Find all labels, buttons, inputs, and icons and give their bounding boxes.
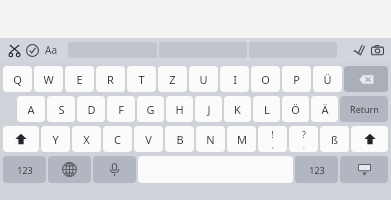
staticText: V <box>145 132 152 147</box>
staticText: C <box>114 132 121 147</box>
staticText: ! <box>271 128 274 140</box>
staticText: X <box>83 132 90 147</box>
staticText: ? <box>302 128 306 140</box>
staticText: R <box>107 72 114 87</box>
staticText: A <box>27 102 35 117</box>
staticText: , <box>272 141 274 151</box>
staticText: E <box>76 72 83 87</box>
button[interactable]: ! <box>258 126 287 152</box>
staticText: 123 <box>309 164 325 176</box>
button[interactable]: Y <box>41 126 70 152</box>
button[interactable]: U <box>189 66 218 92</box>
button[interactable]: K <box>224 96 251 122</box>
button[interactable]: W <box>34 66 63 92</box>
button[interactable]: X <box>72 126 101 152</box>
button[interactable]: A <box>17 96 45 122</box>
button[interactable]: P <box>282 66 311 92</box>
button[interactable]: Camera <box>368 41 386 59</box>
staticText: I <box>233 72 237 87</box>
button[interactable]: L <box>253 96 280 122</box>
staticText: U <box>199 72 208 87</box>
staticText: W <box>43 72 54 87</box>
button[interactable]: Cut <box>5 41 23 59</box>
staticText: Aa <box>45 43 57 57</box>
button[interactable]: S <box>47 96 75 122</box>
button[interactable]: J <box>195 96 222 122</box>
button[interactable]: Confirm <box>23 41 41 59</box>
button[interactable]: M <box>227 126 256 152</box>
button[interactable]: Backspace <box>344 66 388 92</box>
staticText: Ö <box>291 102 300 117</box>
staticText: H <box>175 102 184 117</box>
staticText: F <box>118 102 124 117</box>
staticText: Ä <box>321 102 329 117</box>
button[interactable]: Switch language <box>48 156 91 183</box>
button[interactable]: Z <box>158 66 187 92</box>
button[interactable]: D <box>77 96 105 122</box>
button[interactable]: O <box>251 66 280 92</box>
button[interactable]: Aa <box>41 41 61 59</box>
button[interactable]: I <box>220 66 249 92</box>
staticText: G <box>146 102 155 117</box>
staticText: Z <box>169 72 176 87</box>
button[interactable]: C <box>103 126 132 152</box>
button[interactable]: ? <box>289 126 318 152</box>
staticText: P <box>293 72 300 87</box>
staticText: K <box>234 102 241 117</box>
staticText: B <box>176 132 184 147</box>
button[interactable]: T <box>127 66 156 92</box>
button[interactable]: Q <box>3 66 32 92</box>
button[interactable]: Shift <box>351 126 388 152</box>
button[interactable]: Hide keyboard <box>340 156 388 183</box>
button[interactable]: E <box>65 66 94 92</box>
button[interactable]: Ä <box>311 96 338 122</box>
staticText: Return <box>350 103 379 115</box>
button[interactable]: B <box>165 126 194 152</box>
button[interactable]: Markup <box>350 41 368 59</box>
staticText: O <box>261 72 270 87</box>
button[interactable]: Ü <box>313 66 342 92</box>
staticText: M <box>237 132 247 147</box>
button[interactable]: Return <box>340 96 388 122</box>
staticText: ß <box>331 132 338 147</box>
button[interactable]: Shift <box>3 126 39 152</box>
staticText: Q <box>13 72 22 87</box>
staticText: L <box>264 102 270 117</box>
button[interactable]: Dictate <box>93 156 136 183</box>
button[interactable]: 123 <box>295 156 338 183</box>
staticText: T <box>138 72 145 87</box>
staticText: 123 <box>17 164 33 176</box>
button[interactable]: H <box>166 96 193 122</box>
staticText: Y <box>52 132 59 147</box>
staticText: N <box>206 132 215 147</box>
staticText: J <box>207 102 211 117</box>
staticText: D <box>87 102 96 117</box>
button[interactable]: F <box>107 96 135 122</box>
staticText: Ü <box>323 72 332 87</box>
button[interactable]: ß <box>320 126 349 152</box>
button[interactable]: R <box>96 66 125 92</box>
staticText: S <box>58 102 65 117</box>
button[interactable]: 123 <box>3 156 46 183</box>
staticText: . <box>303 141 305 151</box>
button[interactable]: G <box>137 96 164 122</box>
button[interactable]: N <box>196 126 225 152</box>
button[interactable]: V <box>134 126 163 152</box>
button[interactable]: Ö <box>282 96 309 122</box>
